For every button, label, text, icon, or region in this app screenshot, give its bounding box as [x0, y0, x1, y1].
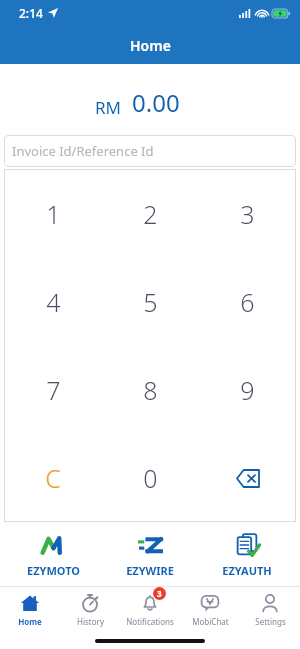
button[interactable]: 3: [120, 587, 180, 633]
staticText: Notifications: [126, 616, 174, 627]
button[interactable]: 3: [199, 169, 296, 258]
button[interactable]: Settings: [240, 587, 300, 633]
staticText: Settings: [255, 616, 286, 627]
button[interactable]: EZYWIRE: [102, 530, 198, 580]
staticText: Home: [130, 36, 171, 55]
button[interactable]: 4: [4, 258, 102, 346]
staticText: RM: [95, 96, 121, 119]
button[interactable]: History: [60, 587, 120, 633]
staticText: 9: [240, 373, 255, 407]
staticText: EZYAUTH: [222, 563, 272, 578]
button[interactable]: EZYMOTO: [5, 530, 101, 580]
staticText: 3: [157, 588, 162, 599]
staticText: History: [77, 616, 104, 627]
button[interactable]: MobiChat: [180, 587, 240, 633]
staticText: 1: [46, 197, 61, 231]
staticText: 4: [46, 285, 61, 319]
staticText: 8: [143, 373, 158, 407]
button[interactable]: C: [4, 434, 102, 522]
staticText: 3: [240, 197, 255, 231]
staticText: EZYMOTO: [27, 563, 80, 578]
button[interactable]: 6: [199, 258, 296, 346]
button[interactable]: 8: [102, 346, 199, 434]
button[interactable]: 5: [102, 258, 199, 346]
staticText: 2: [143, 197, 158, 231]
staticText: EZYWIRE: [126, 563, 174, 578]
staticText: Home: [18, 616, 42, 627]
staticText: 5: [143, 285, 158, 319]
staticText: 2:14: [19, 5, 43, 21]
button[interactable]: Invoice Id/Reference Id: [4, 135, 296, 167]
button[interactable]: 0: [102, 434, 199, 522]
button[interactable]: 9: [199, 346, 296, 434]
button[interactable]: 7: [4, 346, 102, 434]
staticText: Invoice Id/Reference Id: [12, 142, 154, 160]
button[interactable]: Backspace: [199, 434, 296, 522]
staticText: MobiChat: [192, 616, 229, 627]
staticText: 0: [143, 461, 158, 495]
button[interactable]: 1: [4, 169, 102, 258]
staticText: 7: [46, 373, 61, 407]
staticText: C: [45, 461, 61, 495]
button[interactable]: Home: [0, 587, 60, 633]
button[interactable]: 2: [102, 169, 199, 258]
staticText: 6: [240, 285, 255, 319]
staticText: 0.00: [132, 86, 180, 119]
button[interactable]: EZYAUTH: [199, 530, 295, 580]
